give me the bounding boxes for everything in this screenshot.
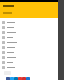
button[interactable] [0, 25, 58, 30]
button[interactable] [0, 60, 58, 65]
button[interactable]: Share [18, 77, 22, 80]
button[interactable]: Share [6, 77, 10, 80]
button[interactable] [0, 55, 58, 60]
button[interactable] [0, 50, 58, 55]
button[interactable] [0, 45, 58, 50]
button[interactable]: Share [26, 77, 30, 80]
button[interactable]: Share [10, 77, 14, 80]
button[interactable]: Share [22, 77, 26, 80]
button[interactable] [0, 65, 58, 70]
button[interactable] [0, 35, 58, 40]
button[interactable] [0, 40, 58, 45]
button[interactable] [0, 20, 58, 25]
button[interactable] [0, 30, 58, 35]
button[interactable]: Share [14, 77, 18, 80]
